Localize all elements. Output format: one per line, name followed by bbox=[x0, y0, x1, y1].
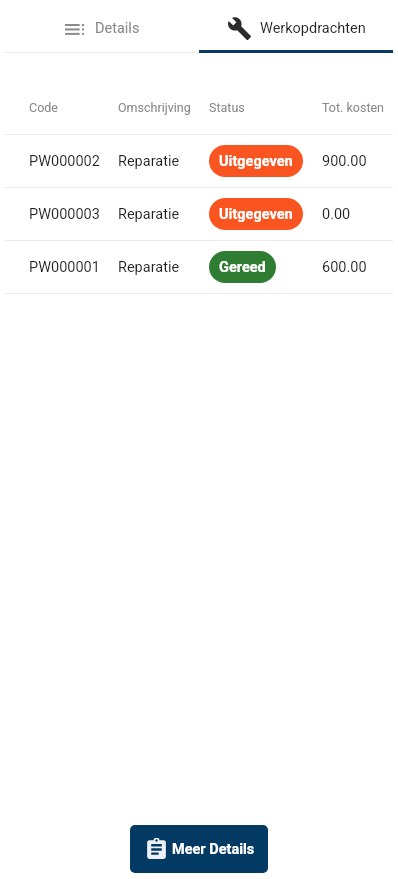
staticText: Reparatie bbox=[118, 206, 209, 223]
staticText: Uitgegeven bbox=[219, 206, 293, 223]
staticText: Werkopdrachten bbox=[260, 20, 366, 37]
button[interactable]: Meer Details bbox=[130, 825, 268, 873]
staticText: PW000002 bbox=[29, 153, 118, 170]
staticText: 0.00 bbox=[322, 206, 351, 223]
button[interactable]: PW000003 bbox=[0, 188, 398, 240]
staticText: 900.00 bbox=[322, 153, 367, 170]
staticText: 600.00 bbox=[322, 259, 367, 276]
button[interactable]: Werkopdrachten bbox=[199, 0, 393, 53]
staticText: Reparatie bbox=[118, 259, 209, 276]
staticText: Reparatie bbox=[118, 153, 209, 170]
staticText: Status bbox=[209, 100, 322, 115]
staticText: Omschrijving bbox=[118, 100, 209, 115]
staticText: Code bbox=[29, 100, 118, 115]
staticText: PW000001 bbox=[29, 259, 118, 276]
button[interactable]: Details bbox=[5, 0, 199, 53]
staticText: Gereed bbox=[219, 259, 266, 276]
button[interactable]: PW000001 bbox=[0, 241, 398, 293]
staticText: Details bbox=[95, 20, 140, 37]
button[interactable]: PW000002 bbox=[0, 135, 398, 187]
staticText: Uitgegeven bbox=[219, 153, 293, 170]
staticText: Meer Details bbox=[172, 841, 255, 858]
staticText: Tot. kosten bbox=[322, 100, 385, 115]
staticText: PW000003 bbox=[29, 206, 118, 223]
